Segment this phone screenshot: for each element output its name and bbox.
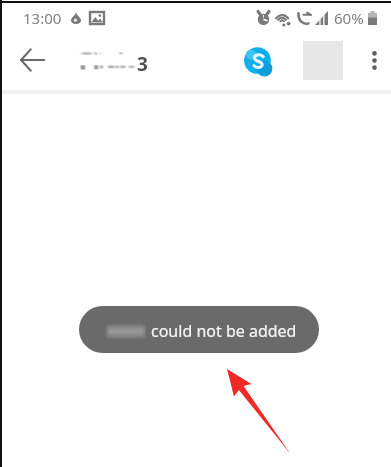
staticText: 13:00 xyxy=(23,8,62,28)
button[interactable]: could not be added xyxy=(79,306,319,353)
button[interactable]: Navigate up xyxy=(8,36,56,84)
button[interactable]: Skype xyxy=(234,37,280,83)
staticText: 3 xyxy=(137,51,148,77)
button[interactable]: More options xyxy=(352,38,391,82)
staticText: could not be added xyxy=(151,320,297,342)
staticText: 60% xyxy=(334,8,364,28)
